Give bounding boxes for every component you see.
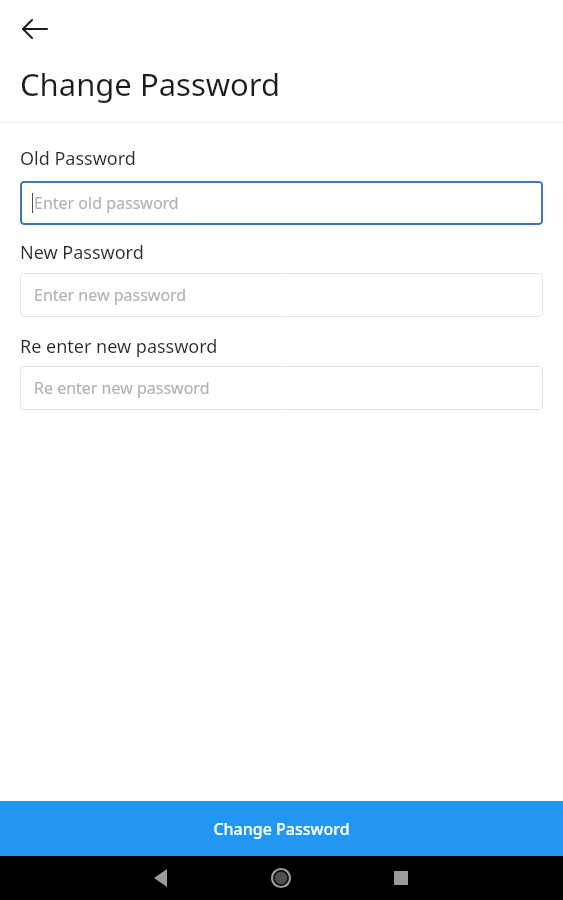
staticText: New Password [20, 240, 144, 265]
button[interactable]: Change Password [0, 801, 563, 856]
button[interactable]: Re enter new password input [20, 366, 543, 410]
staticText: Old Password [20, 146, 136, 171]
button[interactable]: Back [16, 5, 64, 53]
staticText: Enter old password [34, 192, 179, 214]
staticText: Re enter new password [34, 377, 210, 399]
staticText: Change Password [213, 818, 350, 840]
staticText: Enter new password [34, 284, 187, 306]
button[interactable]: Old password input [20, 181, 543, 225]
button[interactable]: New password input [20, 273, 543, 317]
staticText: Re enter new password [20, 334, 218, 359]
staticText: Change Password [20, 63, 281, 105]
